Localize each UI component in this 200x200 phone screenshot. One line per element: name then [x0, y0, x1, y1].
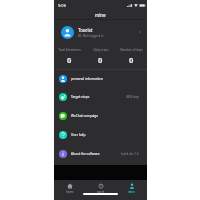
button[interactable]: personal information — [54, 69, 147, 88]
staticText: WeChat campaign — [71, 114, 99, 118]
staticText: 0 — [129, 55, 134, 65]
button[interactable]: User help — [54, 125, 147, 144]
button[interactable]: sport — [85, 181, 116, 195]
staticText: personal information — [71, 77, 103, 81]
staticText: mine — [95, 12, 106, 18]
button[interactable]: Tourist — [54, 20, 147, 44]
button[interactable]: About the software — [54, 144, 147, 163]
staticText: Target steps — [71, 95, 90, 99]
button[interactable]: home — [54, 181, 85, 195]
staticText: Number of days — [120, 48, 143, 52]
staticText: sport — [97, 190, 104, 194]
staticText: 0 — [98, 55, 103, 65]
staticText: mine — [128, 190, 135, 194]
button[interactable]: Daily steps — [85, 44, 116, 69]
button[interactable]: Number of days — [116, 44, 147, 69]
staticText: 0 — [67, 55, 72, 65]
button[interactable]: Total kilometers — [54, 44, 85, 69]
staticText: home — [66, 190, 74, 194]
button[interactable]: mine — [116, 181, 147, 195]
staticText: User help — [71, 133, 86, 137]
staticText: Total kilometers — [58, 48, 81, 52]
staticText: Daily steps — [93, 48, 109, 52]
staticText: build: dev.1.0 — [121, 152, 139, 156]
button[interactable]: WeChat campaign — [54, 106, 147, 125]
staticText: 9:06 — [58, 3, 66, 8]
staticText: ID: Not logged in — [78, 34, 104, 38]
button[interactable]: Target steps — [54, 87, 147, 106]
staticText: 4800 step — [126, 95, 139, 99]
staticText: Tourist — [78, 27, 93, 33]
staticText: About the software — [71, 152, 100, 156]
